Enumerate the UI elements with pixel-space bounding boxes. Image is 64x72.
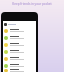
button[interactable] [3,62,36,69]
button[interactable] [3,69,36,72]
button[interactable] [3,22,36,27]
button[interactable] [3,48,36,55]
button[interactable] [3,55,36,62]
button[interactable] [3,34,36,41]
button[interactable] [3,27,36,34]
button[interactable] [3,41,36,48]
staticText: Keep friends in your pocket [0,2,64,6]
